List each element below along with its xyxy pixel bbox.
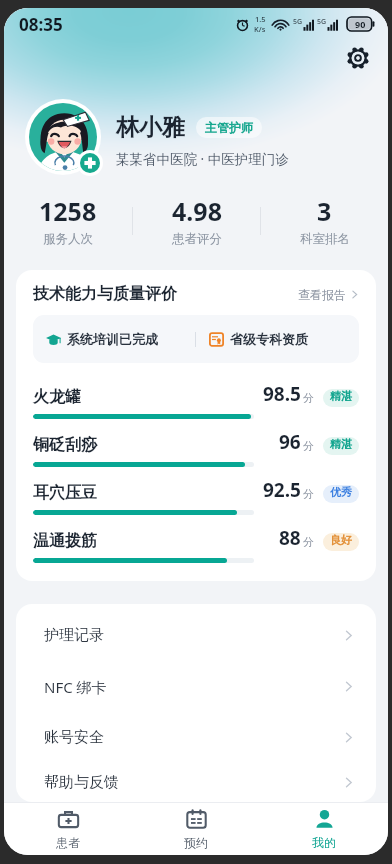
staticText: 良好 [330,533,352,547]
button[interactable]: 患者 [4,803,132,855]
staticText: 耳穴压豆 [33,483,97,503]
staticText: 98.5 [263,381,301,407]
staticText: 分 [303,439,314,453]
staticText: 温通拨筋 [33,531,97,551]
staticText: 分 [303,487,314,501]
staticText: 1.5 [255,14,266,24]
staticText: 90 [355,18,366,30]
staticText: 科室排名 [300,231,350,247]
staticText: 优秀 [330,485,352,499]
staticText: 我的 [312,835,336,850]
staticText: 账号安全 [44,728,104,747]
staticText: 精湛 [330,437,352,451]
staticText: 5G [317,17,327,27]
staticText: 护理记录 [44,626,104,645]
staticText: 分 [303,391,314,405]
staticText: K/s [254,24,266,34]
staticText: 88 [279,525,301,551]
staticText: 预约 [184,835,208,850]
button[interactable]: 预约 [132,803,260,855]
staticText: 服务人次 [43,231,93,247]
button[interactable]: 护理记录 [16,610,376,661]
staticText: 3 [317,194,332,228]
staticText: 林小雅 [116,113,185,142]
staticText: 铜砭刮痧 [33,435,97,455]
staticText: 5G [293,17,303,27]
staticText: 患者评分 [172,231,222,247]
staticText: 08:35 [19,13,63,36]
staticText: 96 [279,429,301,455]
staticText: 系统培训已完成 [67,331,158,347]
staticText: 4.98 [172,194,222,228]
button[interactable]: Settings [342,42,374,74]
staticText: 查看报告 [298,287,346,302]
staticText: 精湛 [330,389,352,403]
staticText: 省级专科资质 [230,331,308,347]
staticText: 分 [303,535,314,549]
button[interactable]: 帮助与反馈 [16,763,376,802]
staticText: 92.5 [263,477,301,503]
staticText: 1258 [39,194,97,228]
button[interactable]: 我的 [260,803,388,855]
staticText: 火龙罐 [33,387,81,407]
staticText: 技术能力与质量评价 [33,284,177,304]
button[interactable]: 账号安全 [16,712,376,763]
staticText: 患者 [56,835,80,850]
staticText: NFC 绑卡 [44,677,107,697]
staticText: 帮助与反馈 [44,773,119,792]
staticText: 某某省中医院 · 中医护理门诊 [116,150,289,168]
button[interactable]: NFC 绑卡 [16,661,376,712]
button[interactable]: 查看报告 [298,285,359,304]
staticText: 主管护师 [205,120,253,135]
